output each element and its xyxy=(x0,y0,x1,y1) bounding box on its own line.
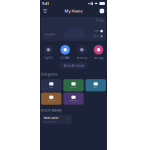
staticText: Climate xyxy=(60,56,70,59)
staticText: Gen xyxy=(93,34,99,38)
staticText: Show all rooms xyxy=(63,64,83,67)
staticText: Recent Activity xyxy=(41,109,61,112)
staticText: Garden xyxy=(70,86,76,88)
button[interactable]: Bedroom xyxy=(41,92,61,105)
button[interactable]: Bathroom xyxy=(63,92,84,105)
button[interactable]: Garden xyxy=(63,79,84,91)
button[interactable]: Menu xyxy=(41,7,49,15)
button[interactable]: Show all rooms xyxy=(59,62,87,69)
staticText: Bedroom xyxy=(48,100,55,102)
staticText: Living xyxy=(49,86,53,88)
button[interactable]: Climate xyxy=(57,45,73,59)
button[interactable]: Security xyxy=(73,45,90,59)
staticText: Kitchen xyxy=(93,86,98,88)
staticText: Bathroom xyxy=(70,100,77,102)
staticText: Lights xyxy=(44,56,52,59)
staticText: Security xyxy=(77,56,87,59)
staticText: 9:41 xyxy=(42,1,49,6)
button[interactable]: Add xyxy=(98,7,106,15)
staticText: Use xyxy=(94,29,99,33)
staticText: Energy xyxy=(94,56,103,59)
button[interactable]: Energy xyxy=(90,45,107,59)
button[interactable]: Kitchen xyxy=(85,79,106,91)
button[interactable]: Front Door xyxy=(41,115,72,124)
staticText: My Home xyxy=(64,8,82,14)
staticText: Unlocked 2m ago xyxy=(43,121,55,123)
staticText: Front Door xyxy=(43,116,58,120)
button[interactable]: Living xyxy=(41,79,61,91)
button[interactable]: Lights xyxy=(40,45,57,59)
staticText: Categories xyxy=(41,73,57,76)
staticText: Today xyxy=(96,19,103,22)
